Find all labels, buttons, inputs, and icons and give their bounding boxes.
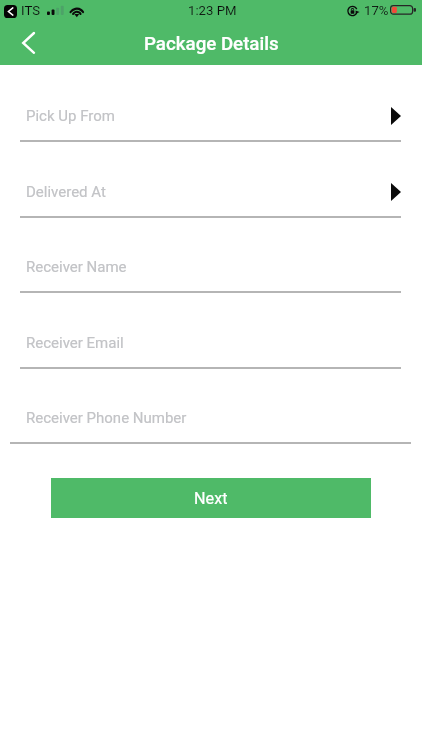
staticText: 17% <box>364 3 389 18</box>
button[interactable]: Receiver Email <box>0 322 422 382</box>
button[interactable]: Receiver Name <box>0 246 422 306</box>
button[interactable]: Pick Up From <box>0 95 422 155</box>
staticText: Next <box>194 489 228 508</box>
staticText: Receiver Phone Number <box>26 409 187 427</box>
staticText: Receiver Name <box>26 258 127 276</box>
button[interactable]: Back <box>4 19 52 67</box>
staticText: 1:23 PM <box>188 3 237 18</box>
staticText: ITS <box>21 3 40 18</box>
button[interactable]: Next <box>51 478 371 518</box>
staticText: Pick Up From <box>26 107 115 125</box>
button[interactable]: Delivered At <box>0 171 422 231</box>
button[interactable]: Receiver Phone Number <box>0 397 422 457</box>
staticText: Delivered At <box>26 183 106 201</box>
staticText: Package Details <box>144 33 279 55</box>
staticText: Receiver Email <box>26 334 124 352</box>
